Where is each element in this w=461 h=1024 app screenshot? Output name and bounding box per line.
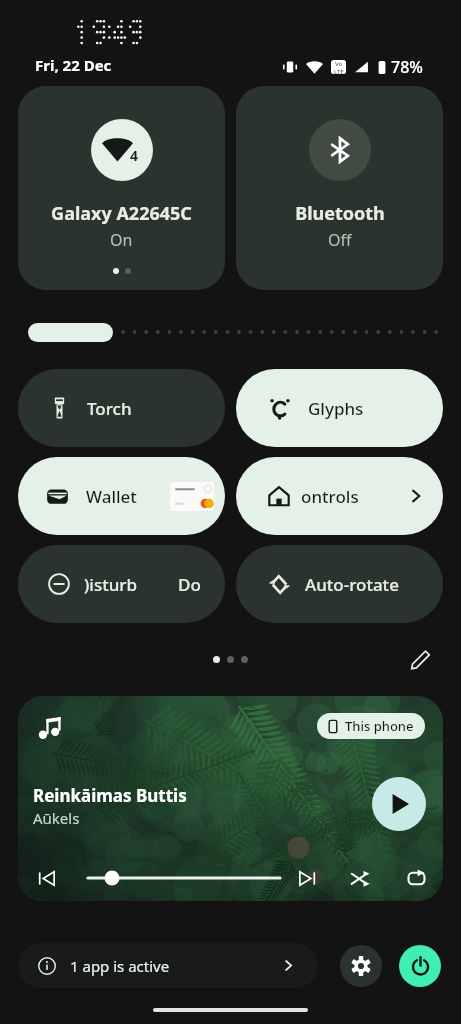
button[interactable]: Next — [291, 862, 323, 894]
button[interactable]: Edit tiles — [407, 646, 433, 672]
button[interactable]: Auto-rotate — [236, 545, 443, 623]
staticText: Fri, 22 Dec — [35, 55, 112, 75]
button[interactable]: This phone — [18, 696, 443, 901]
staticText: On — [110, 229, 133, 251]
staticText: Do — [178, 573, 201, 596]
button[interactable]: Power — [399, 945, 441, 987]
staticText: Aūkels — [33, 808, 80, 828]
button[interactable]: 1 app is active — [18, 943, 318, 988]
button[interactable]: Repeat — [400, 862, 432, 894]
staticText: Galaxy A22645C — [51, 201, 192, 226]
button[interactable]: )isturb — [18, 545, 225, 623]
button[interactable]: Glyphs — [236, 369, 443, 447]
staticText: 4 — [130, 146, 139, 165]
button[interactable]: Brightness — [28, 323, 113, 342]
button[interactable]: Previous — [30, 862, 62, 894]
staticText: Vo — [335, 60, 343, 68]
button[interactable]: Shuffle — [344, 862, 376, 894]
staticText: Off — [328, 229, 352, 251]
staticText: Glyphs — [308, 397, 364, 420]
staticText: Bluetooth — [295, 201, 385, 226]
staticText: Torch — [87, 397, 132, 420]
button[interactable]: Bluetooth — [236, 86, 443, 290]
staticText: LTE — [334, 68, 344, 74]
staticText: Auto-rotate — [305, 573, 399, 596]
button[interactable]: ontrols — [236, 457, 443, 535]
button[interactable]: Torch — [18, 369, 225, 447]
staticText: Wallet — [86, 485, 137, 508]
staticText: Reinkāimas Buttis — [33, 784, 187, 807]
staticText: This phone — [345, 717, 414, 735]
staticText: 78% — [391, 56, 423, 78]
staticText: )isturb — [84, 573, 138, 596]
button[interactable]: This phone — [317, 713, 425, 739]
button[interactable]: Play — [372, 777, 426, 831]
button[interactable]: 4 — [18, 86, 225, 290]
staticText: 1 app is active — [70, 956, 170, 976]
button[interactable]: Settings — [340, 945, 382, 987]
staticText: ontrols — [301, 485, 359, 508]
button[interactable]: Wallet — [18, 457, 225, 535]
